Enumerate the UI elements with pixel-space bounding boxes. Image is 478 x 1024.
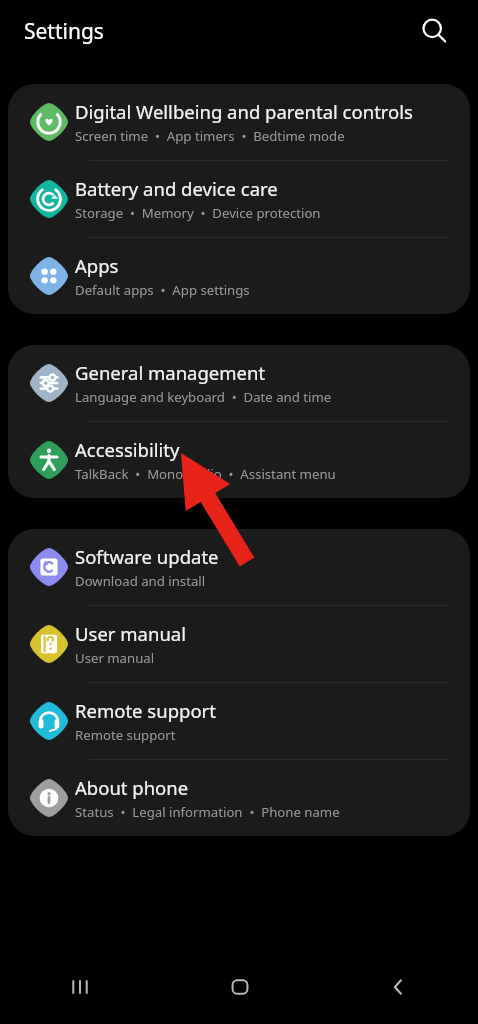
- staticText: Download and install: [75, 572, 206, 590]
- staticText: TalkBack • Mono audio • Assistant menu: [75, 465, 336, 483]
- button[interactable]: Digital Wellbeing and parental controls: [8, 84, 470, 161]
- staticText: User manual: [75, 621, 186, 646]
- staticText: Digital Wellbeing and parental controls: [75, 99, 413, 124]
- button[interactable]: Recents: [0, 950, 160, 1024]
- button[interactable]: Search: [412, 9, 456, 53]
- staticText: Remote support: [75, 726, 176, 744]
- staticText: Settings: [24, 17, 104, 46]
- staticText: Battery and device care: [75, 176, 278, 201]
- staticText: Apps: [75, 253, 119, 278]
- staticText: User manual: [75, 649, 155, 667]
- staticText: General management: [75, 360, 266, 385]
- staticText: Remote support: [75, 698, 216, 723]
- staticText: Default apps • App settings: [75, 281, 250, 299]
- staticText: Software update: [75, 544, 219, 569]
- staticText: About phone: [75, 775, 189, 800]
- button[interactable]: About phone: [8, 760, 470, 836]
- staticText: Accessibility: [75, 437, 180, 462]
- button[interactable]: Back: [319, 950, 478, 1024]
- button[interactable]: General management: [8, 345, 470, 422]
- staticText: Language and keyboard • Date and time: [75, 388, 332, 406]
- button[interactable]: User manual: [8, 606, 470, 683]
- button[interactable]: Accessibility: [8, 422, 470, 498]
- button[interactable]: Battery and device care: [8, 161, 470, 238]
- staticText: Storage • Memory • Device protection: [75, 204, 321, 222]
- staticText: Status • Legal information • Phone name: [75, 803, 340, 821]
- staticText: Screen time • App timers • Bedtime mode: [75, 127, 345, 145]
- button[interactable]: Remote support: [8, 683, 470, 760]
- button[interactable]: Apps: [8, 238, 470, 314]
- button[interactable]: Software update: [8, 529, 470, 606]
- button[interactable]: Home: [160, 950, 319, 1024]
